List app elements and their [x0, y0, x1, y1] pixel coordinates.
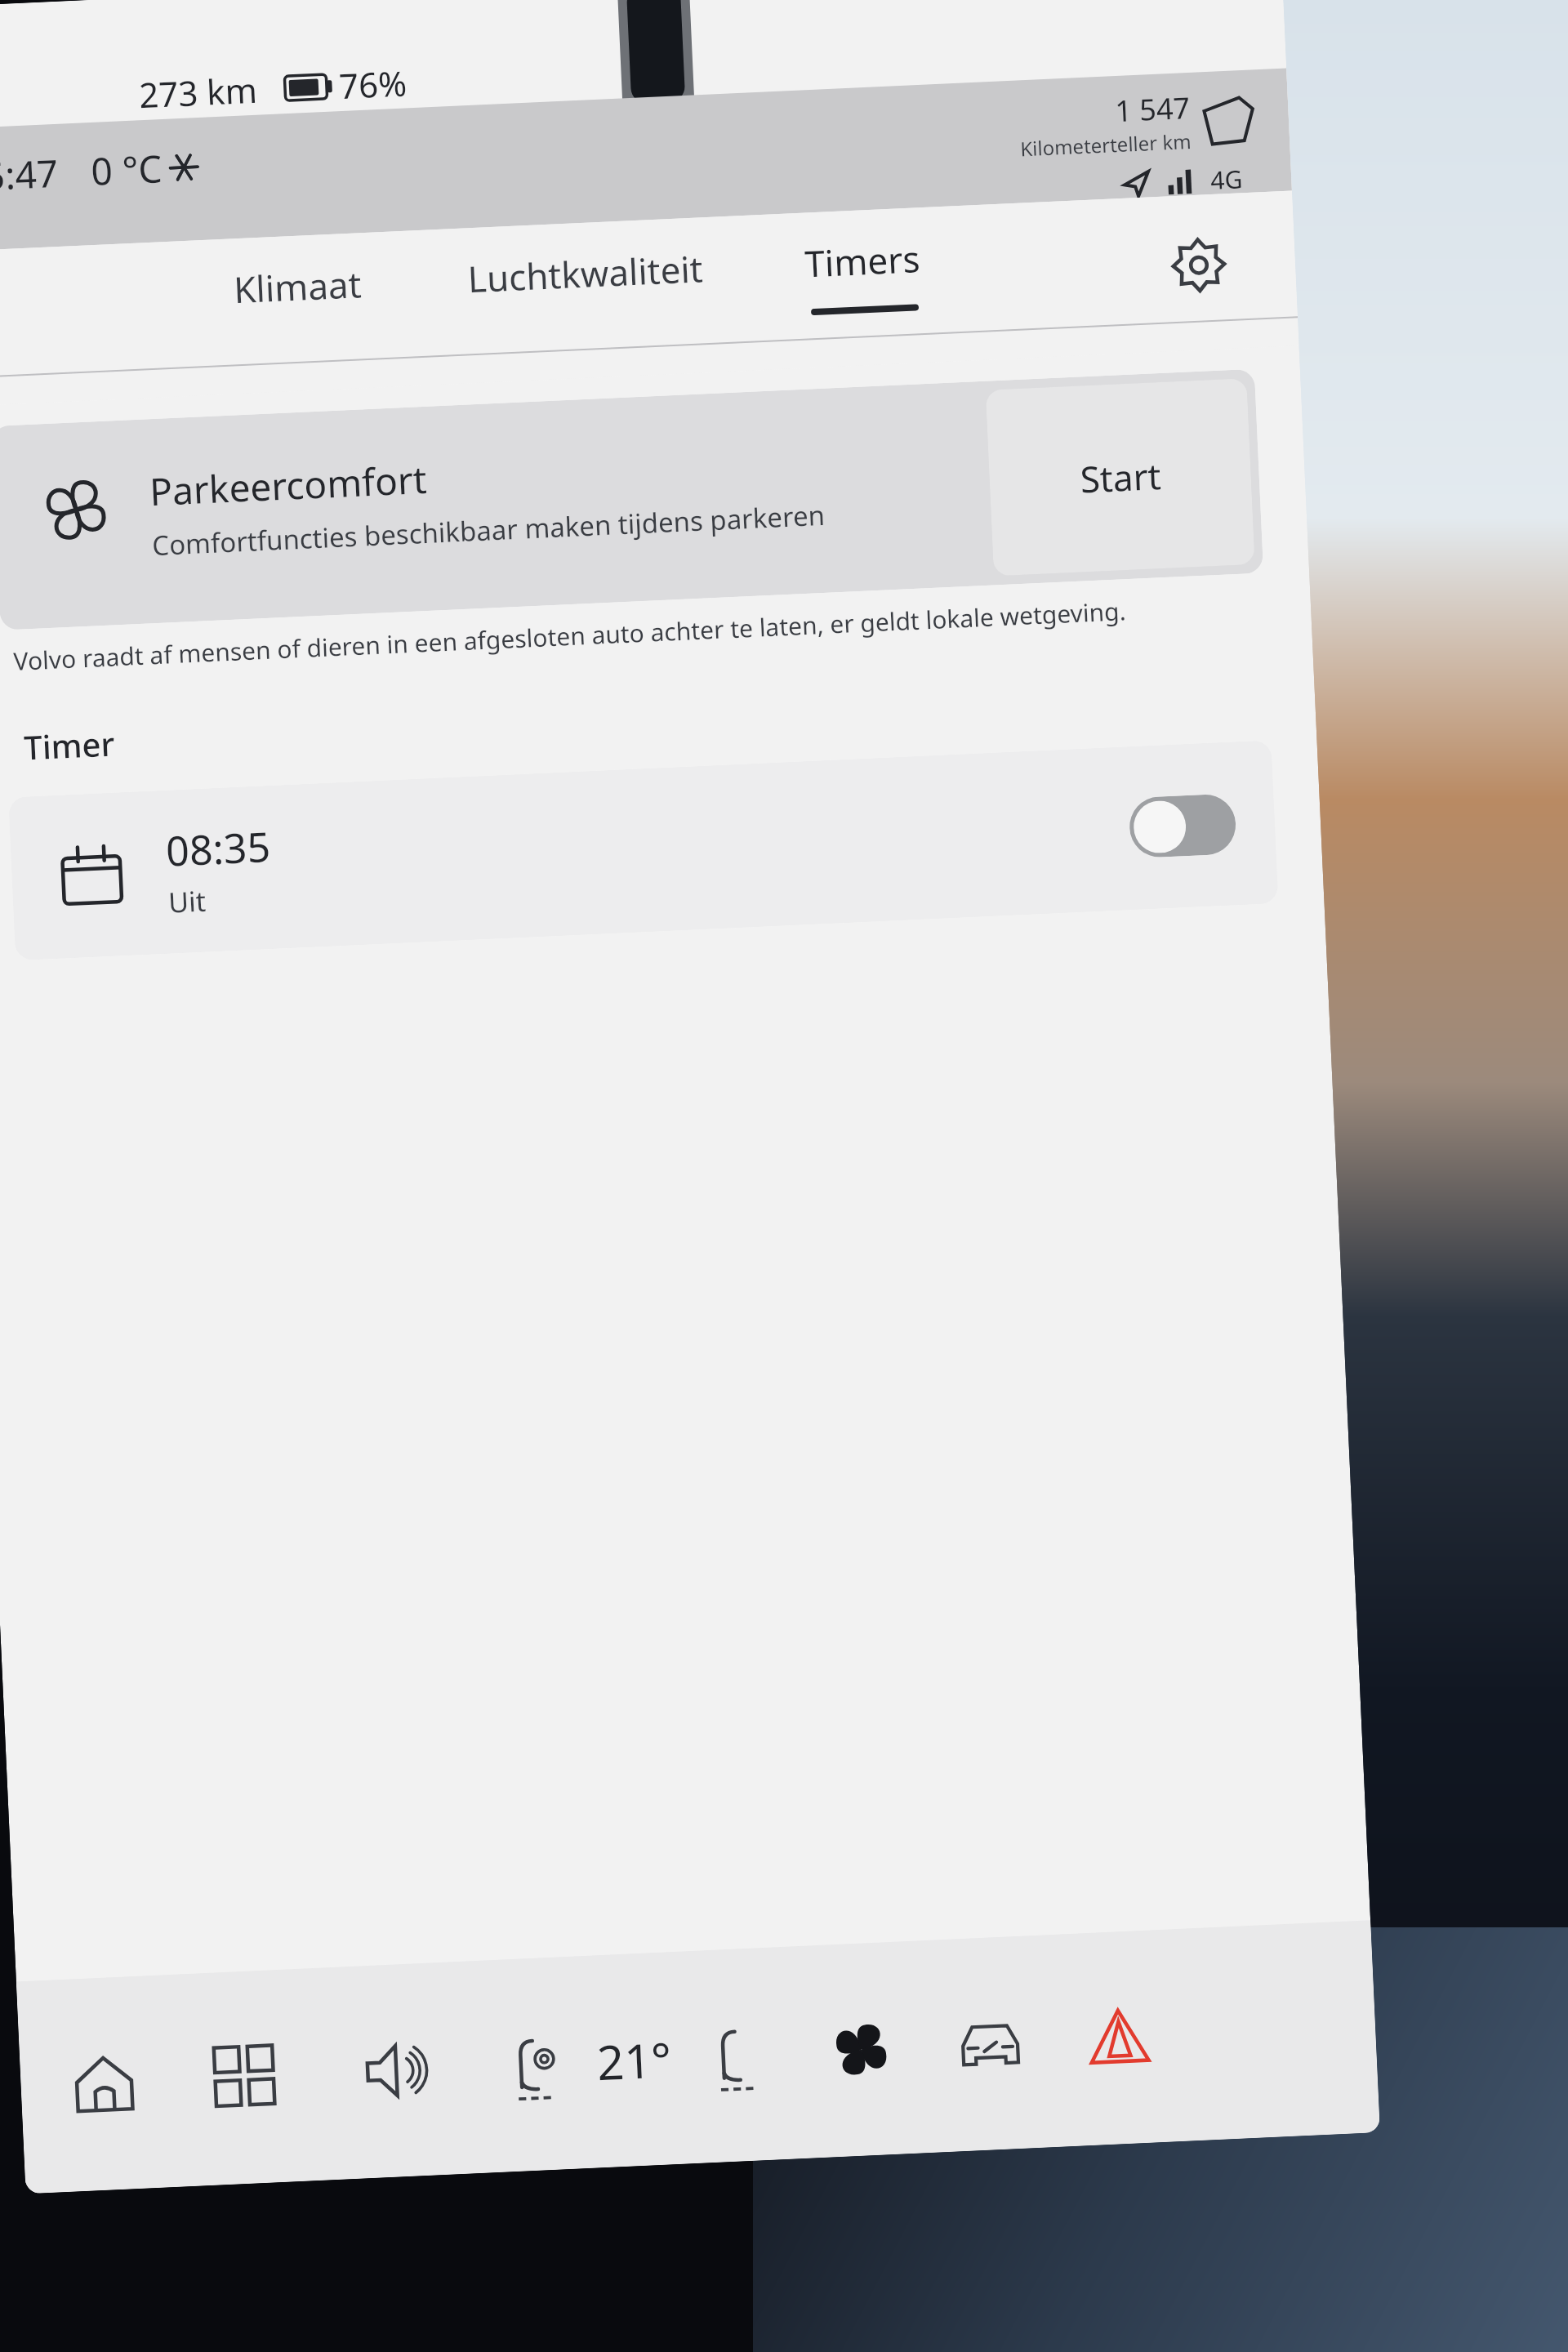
button[interactable]: Instellingen	[1160, 226, 1238, 304]
button[interactable]: Ontwaseming	[942, 1996, 1038, 2091]
button[interactable]: Alarmlichten	[1071, 1990, 1167, 2086]
staticText: 76%	[338, 59, 408, 109]
button[interactable]: Stoelverwarming bestuurder	[486, 2017, 581, 2112]
staticText: 21°	[596, 2026, 674, 2094]
button[interactable]: Volume	[349, 2023, 444, 2119]
staticText: 08:35	[165, 818, 272, 878]
button[interactable]: Klimaat	[814, 2002, 909, 2097]
button[interactable]: Timers	[795, 228, 931, 321]
button[interactable]: Parkeercomfort	[0, 369, 1263, 630]
staticText: Timer	[23, 721, 116, 769]
staticText: Kilometerteller km	[1020, 127, 1192, 162]
staticText: 1 547	[1114, 87, 1191, 131]
staticText: Start	[1079, 451, 1162, 503]
button[interactable]: Stoelverwarming passagier	[688, 2008, 784, 2103]
staticText: 0 °C	[90, 142, 164, 197]
button[interactable]: Luchtkwaliteit	[458, 238, 713, 330]
staticText: 4G	[1210, 162, 1243, 197]
staticText: Volvo raadt af mensen of dieren in een a…	[13, 594, 1127, 678]
staticText: Klimaat	[233, 259, 363, 314]
staticText: Parkeercomfort	[148, 453, 428, 517]
staticText: 15:47	[0, 147, 59, 203]
button[interactable]: Start	[57, 2036, 152, 2132]
button[interactable]: Start	[985, 378, 1255, 576]
button[interactable]: Klimaat	[224, 254, 372, 340]
staticText: Timers	[804, 234, 922, 288]
button[interactable]: Timer aan of uit	[1128, 793, 1237, 858]
button[interactable]: 08:35	[8, 740, 1279, 961]
staticText: Uit	[167, 882, 207, 921]
staticText: 273 km	[138, 66, 258, 118]
button[interactable]: Apps	[198, 2030, 294, 2125]
staticText: Luchtkwaliteit	[467, 244, 704, 303]
staticText: Comfortfuncties beschikbaar maken tijden…	[151, 496, 826, 564]
button[interactable]: 21°	[585, 2016, 684, 2104]
